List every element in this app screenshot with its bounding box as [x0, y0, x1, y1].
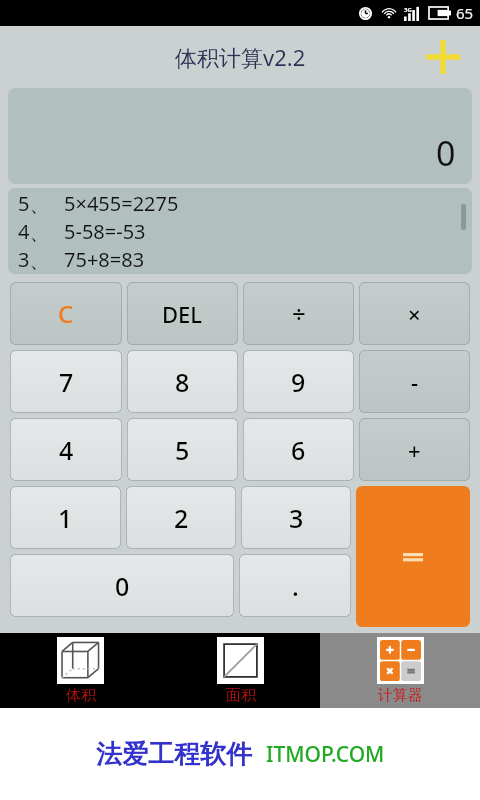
staticText: 6 — [291, 433, 306, 467]
staticText: 5 — [175, 433, 190, 467]
button[interactable]: 0 — [10, 554, 234, 617]
staticText: 8 — [175, 365, 190, 399]
staticText: 2 — [174, 501, 189, 535]
staticText: 5×455=2275 — [64, 190, 179, 217]
staticText: 3G — [404, 6, 412, 14]
button[interactable]: 体积 — [0, 633, 160, 708]
button[interactable]: 6 — [243, 418, 354, 481]
button[interactable]: DEL — [127, 282, 238, 345]
button[interactable]: - — [359, 350, 470, 413]
staticText: DEL — [162, 299, 203, 329]
button[interactable]: Add — [420, 34, 466, 80]
staticText: 4 — [59, 433, 74, 467]
button[interactable]: 0 — [8, 88, 472, 184]
button[interactable]: ÷ — [243, 282, 354, 345]
staticText: 面积 — [226, 686, 256, 705]
button[interactable]: 5 — [127, 418, 238, 481]
staticText: 计算器 — [378, 686, 423, 705]
staticText: 体积计算v2.2 — [175, 42, 306, 72]
staticText: - — [411, 367, 419, 397]
staticText: 7 — [59, 365, 74, 399]
button[interactable]: 2 — [126, 486, 236, 549]
button[interactable]: 计算器 — [320, 633, 480, 708]
button[interactable]: 9 — [243, 350, 354, 413]
staticText: 1 — [58, 501, 73, 535]
staticText: 4、 — [18, 218, 64, 245]
staticText: 体积 — [66, 686, 96, 705]
button[interactable]: 7 — [10, 350, 122, 413]
button[interactable]: 5、 — [8, 188, 472, 274]
staticText: 法爱工程软件 — [96, 738, 252, 771]
button[interactable]: + — [359, 418, 470, 481]
button[interactable]: 1 — [10, 486, 121, 549]
button[interactable]: . — [239, 554, 351, 617]
staticText: + — [408, 435, 421, 465]
staticText: 3 — [289, 501, 304, 535]
staticText: 75+8=83 — [64, 246, 145, 273]
button[interactable]: 4 — [10, 418, 122, 481]
staticText: 0 — [115, 569, 130, 603]
staticText: 65 — [456, 3, 474, 23]
button[interactable]: C — [10, 282, 122, 345]
staticText: . — [292, 569, 299, 603]
button[interactable]: 3 — [241, 486, 351, 549]
staticText: C — [58, 297, 74, 330]
staticText: × — [408, 299, 421, 329]
staticText: 0 — [436, 130, 456, 176]
button[interactable]: 8 — [127, 350, 238, 413]
button[interactable]: × — [359, 282, 470, 345]
button[interactable]: Equals — [356, 486, 470, 627]
staticText: 5-58=-53 — [64, 218, 146, 245]
staticText: 5、 — [18, 190, 64, 217]
staticText: 3、 — [18, 246, 64, 273]
staticText: ÷ — [292, 297, 306, 330]
staticText: ITMOP.COM — [266, 740, 385, 769]
button[interactable]: 面积 — [160, 633, 320, 708]
staticText: 9 — [291, 365, 306, 399]
